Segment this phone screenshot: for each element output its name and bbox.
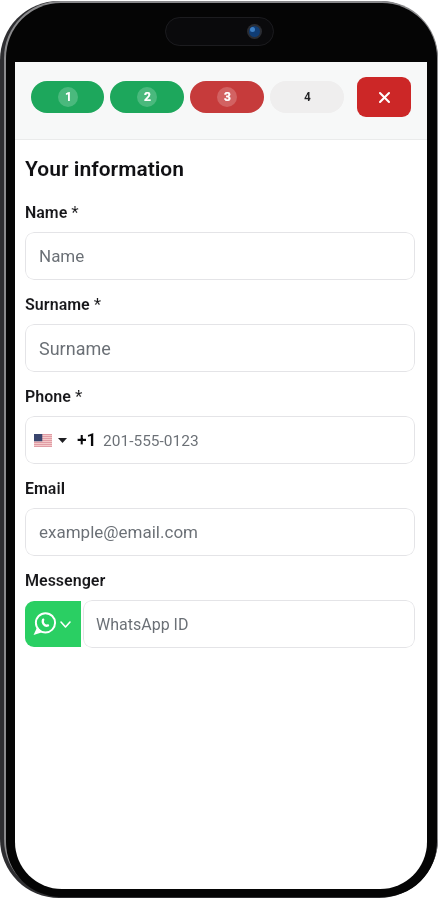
staticText: WhatsApp ID [96, 615, 189, 634]
staticText: Name [39, 246, 85, 266]
staticText: +1 [77, 430, 97, 451]
staticText: Phone * [25, 387, 83, 406]
staticText: Email [25, 479, 65, 498]
button[interactable]: Close [357, 77, 411, 117]
staticText: Messenger [25, 571, 106, 590]
staticText: 2 [144, 90, 151, 104]
staticText: Surname * [25, 295, 101, 314]
staticText: 3 [224, 90, 231, 104]
button[interactable]: +1 [25, 416, 415, 464]
button[interactable]: 3 [190, 81, 264, 113]
staticText: Name * [25, 203, 79, 222]
button[interactable]: Name [25, 232, 415, 280]
staticText: Your information [25, 157, 184, 182]
button[interactable]: example@email.com [25, 508, 415, 556]
button[interactable]: Surname [25, 324, 415, 372]
staticText: example@email.com [39, 522, 198, 542]
button[interactable]: Select messenger [25, 601, 81, 647]
button[interactable]: WhatsApp ID [83, 600, 415, 648]
staticText: 4 [304, 90, 311, 104]
staticText: 201-555-0123 [103, 432, 199, 450]
button[interactable]: 2 [110, 81, 184, 113]
staticText: 1 [65, 90, 72, 104]
staticText: Surname [39, 338, 111, 359]
button[interactable]: 4 [270, 81, 344, 113]
button[interactable]: 1 [31, 81, 104, 113]
